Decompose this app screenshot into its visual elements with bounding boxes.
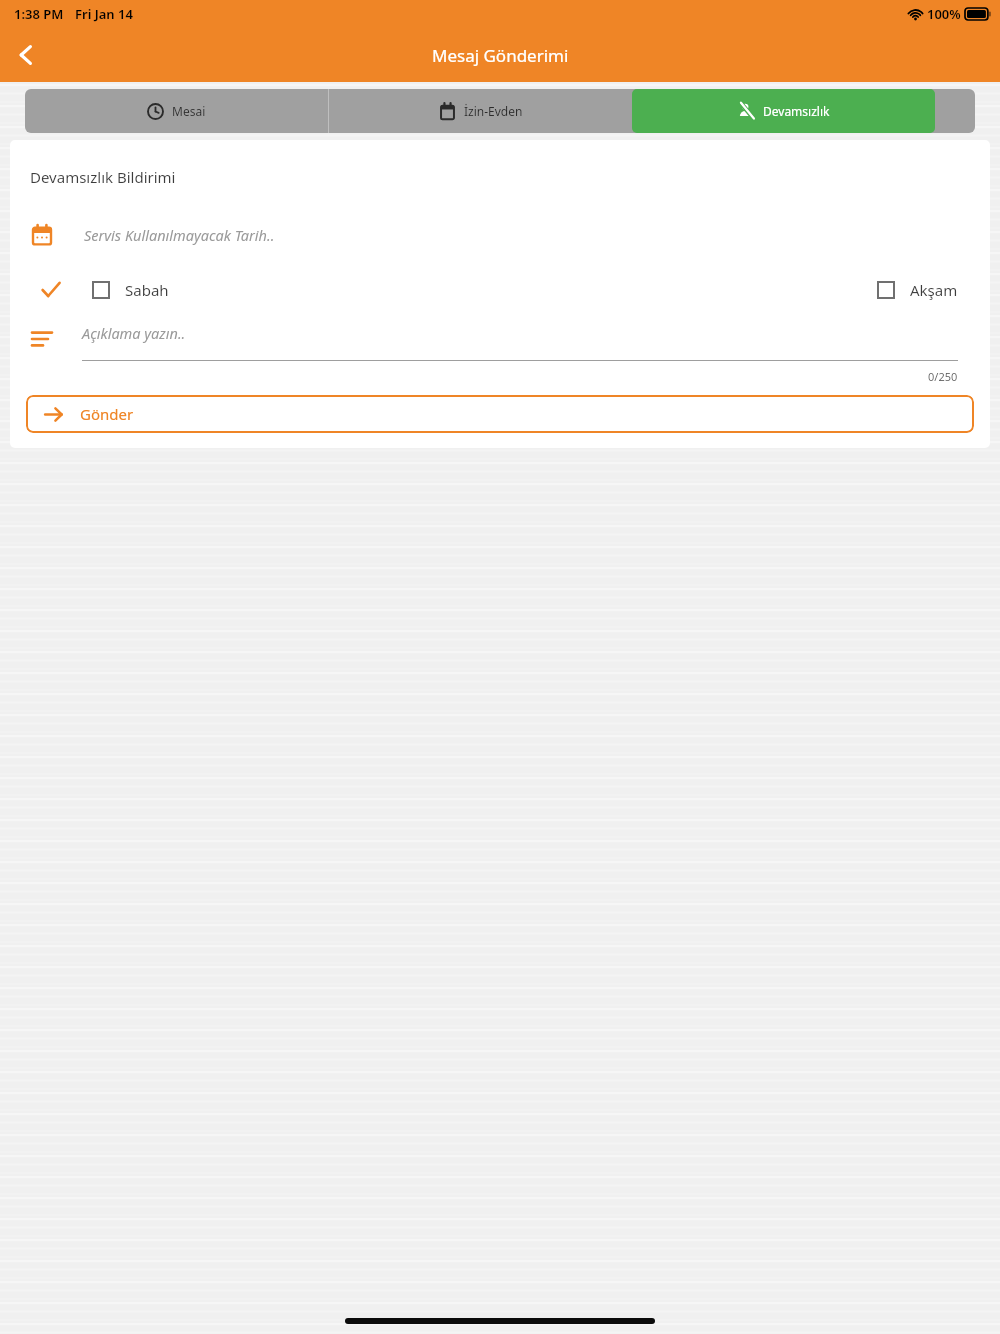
staticText: İzin-Evden <box>464 103 523 119</box>
button[interactable]: Servis Kullanılmayacak Tarih.. <box>10 215 990 255</box>
button[interactable]: İzin-Evden <box>329 89 632 133</box>
button[interactable]: Akşam <box>877 280 958 300</box>
staticText: Gönder <box>80 404 134 424</box>
staticText: Sabah <box>125 280 169 300</box>
staticText: Açıklama yazın.. <box>82 323 186 343</box>
button[interactable]: Sabah <box>92 280 169 300</box>
button[interactable]: Back <box>0 29 52 81</box>
staticText: Mesaj Gönderimi <box>432 44 569 67</box>
button[interactable]: Mesai <box>25 89 328 133</box>
staticText: Mesai <box>172 103 206 119</box>
staticText: Servis Kullanılmayacak Tarih.. <box>84 225 275 245</box>
staticText: Fri Jan 14 <box>75 5 133 23</box>
button[interactable]: Devamsızlık <box>632 89 935 133</box>
button[interactable]: Açıklama yazın.. <box>10 323 990 384</box>
staticText: Akşam <box>910 280 958 300</box>
staticText: Devamsızlık <box>763 103 830 119</box>
staticText: Devamsızlık Bildirimi <box>30 167 176 187</box>
staticText: 1:38 PM <box>14 5 64 23</box>
staticText: 0/250 <box>928 369 958 384</box>
staticText: 100% <box>927 5 961 23</box>
button[interactable]: Gönder <box>26 395 974 433</box>
